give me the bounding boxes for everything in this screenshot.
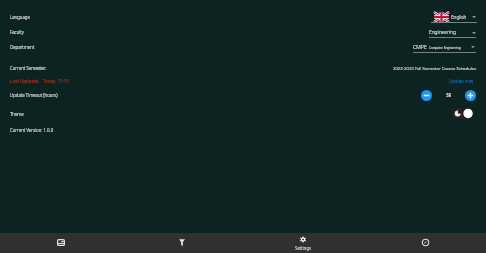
button[interactable]: Schedule [0,233,121,253]
staticText: Update now [449,78,474,84]
staticText: Current Semester: [10,65,47,71]
staticText: Settings [295,245,312,251]
staticText: Update Timeout (hours) [10,92,58,98]
staticText: Theme [10,111,24,117]
button[interactable]: Select department [413,43,476,52]
button[interactable]: Select language [434,12,476,22]
staticText: Engineering [429,29,456,36]
button[interactable]: Increase timeout [465,90,476,101]
staticText: 38 [446,92,452,98]
staticText: Faculty [10,29,24,35]
staticText: 11:51 [58,78,70,84]
button[interactable]: Settings [242,233,364,253]
button[interactable]: Select faculty [429,28,476,37]
button[interactable]: Update now [449,78,474,84]
staticText: 2022-2023 Fall Semester Course Schedules [393,65,477,71]
staticText: Today [43,78,56,84]
button[interactable]: Decrease timeout [421,90,432,101]
staticText: CMPE [413,43,427,50]
button[interactable]: Toggle dark theme [452,108,473,119]
button[interactable]: Filter [121,233,242,253]
staticText: Current Version: 1.0.0 [10,127,54,133]
staticText: Computer Engineering [429,46,461,50]
button[interactable]: Explore [364,233,486,253]
staticText: English [451,14,467,20]
staticText: Language [10,14,30,20]
staticText: Department [10,44,35,50]
staticText: Last Updated [10,78,39,84]
